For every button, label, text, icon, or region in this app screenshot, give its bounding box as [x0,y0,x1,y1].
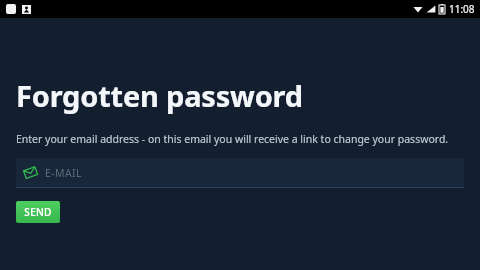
staticText: SEND [24,205,52,219]
staticText: Enter your email address - on this email… [16,132,449,146]
other: Email [24,166,37,179]
button[interactable]: SEND [16,201,60,223]
staticText: 11:08 [449,2,475,16]
staticText: Forgotten password [16,76,303,115]
staticText: E-MAIL [45,166,82,180]
button[interactable]: Email [16,158,464,188]
